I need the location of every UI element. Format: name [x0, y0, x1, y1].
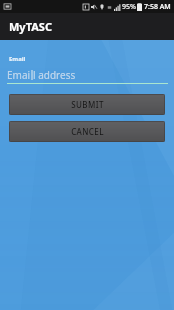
button[interactable]: SUBMIT	[9, 94, 165, 115]
staticText: Emai	[7, 68, 31, 82]
staticText: MyTASC	[9, 19, 52, 34]
button[interactable]: CANCEL	[9, 121, 165, 142]
staticText: 7:58 AM	[144, 2, 171, 12]
staticText: 95%	[122, 2, 136, 12]
staticText: Email	[9, 55, 26, 63]
staticText: l address	[33, 68, 76, 82]
staticText: SUBMIT	[71, 99, 104, 110]
button[interactable]: Emai	[7, 67, 167, 83]
staticText: CANCEL	[71, 126, 104, 137]
